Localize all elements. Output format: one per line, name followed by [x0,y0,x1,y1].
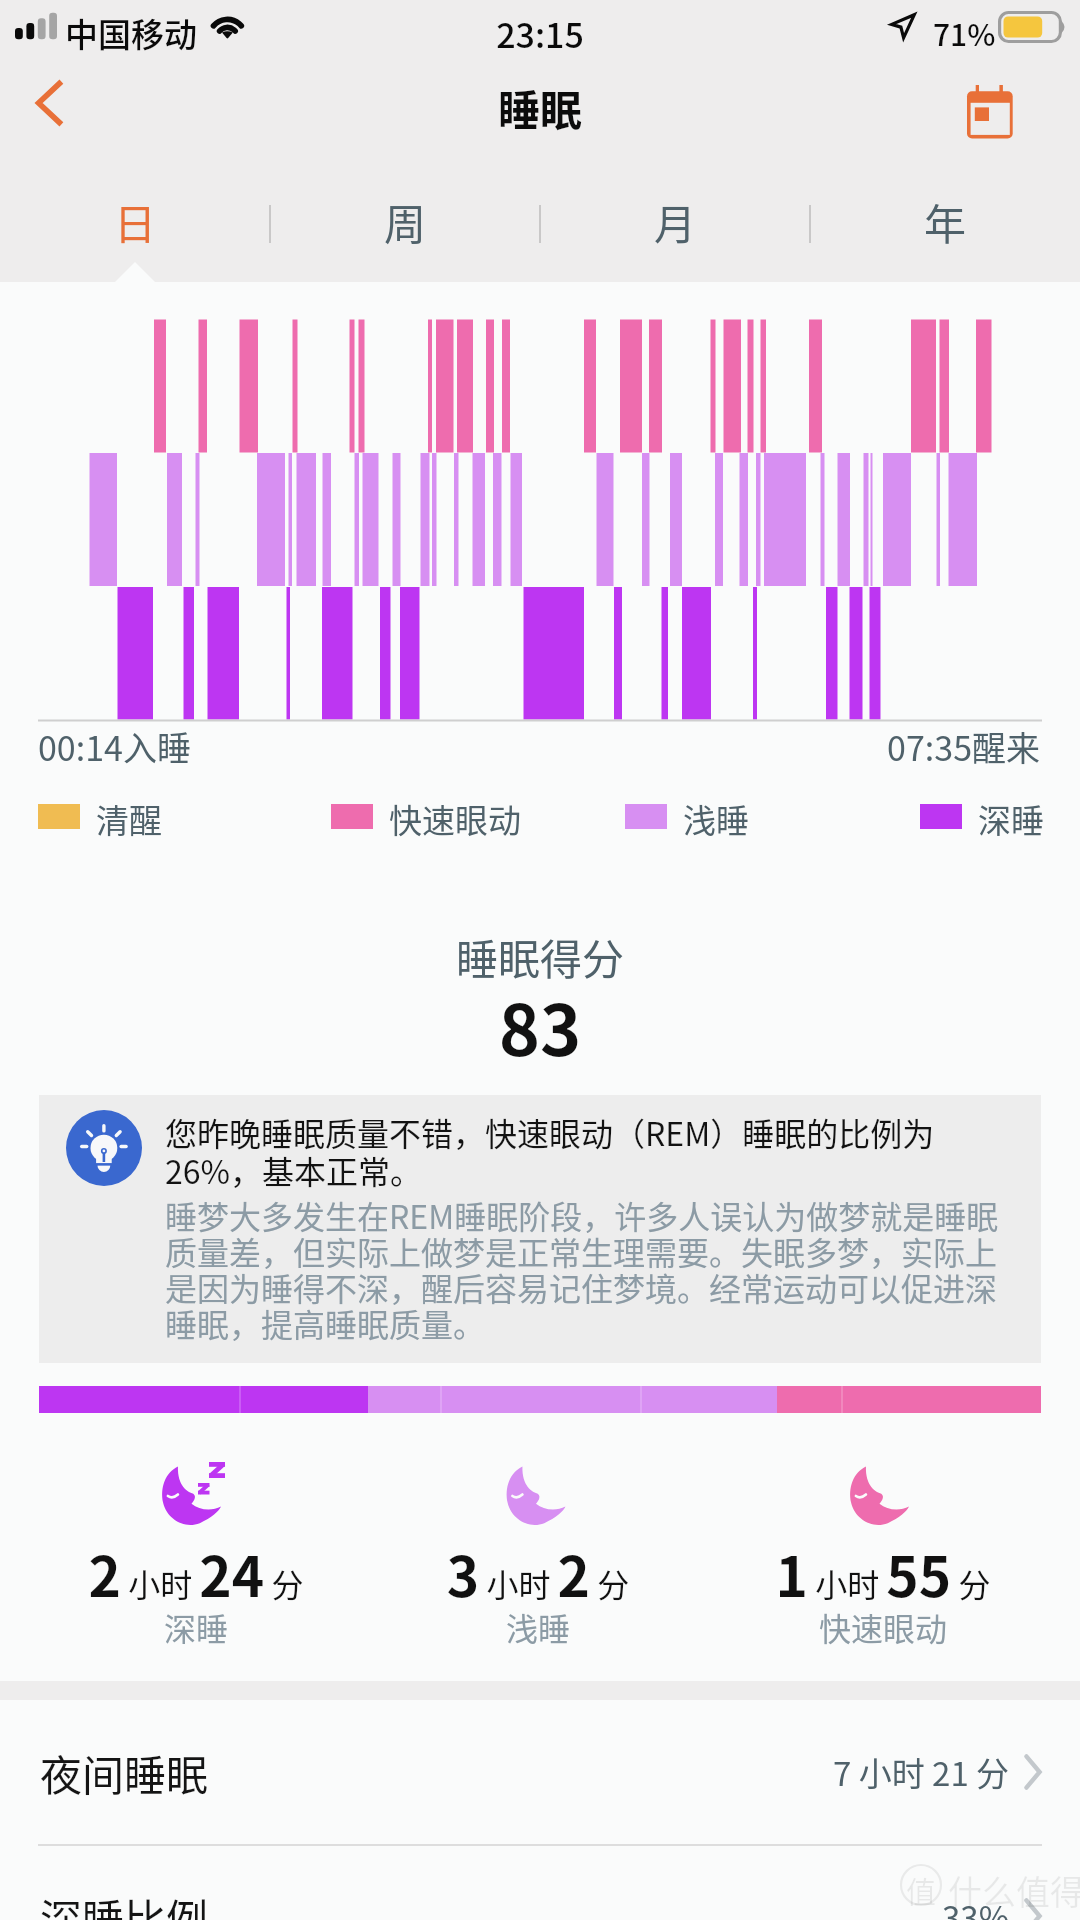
button[interactable]: 清醒 [38,795,162,837]
button[interactable]: 浅睡 [625,795,749,837]
staticText: 年 [924,191,967,252]
staticText: 睡梦大多发生在REM睡眠阶段，许多人误认为做梦就是睡眠 质量差，但实际上做梦是正… [165,1192,999,1346]
button[interactable]: 深睡比例 [0,1844,1080,1920]
staticText: 中国移动 [65,9,197,57]
staticText: 周 [384,191,427,252]
button[interactable]: 深睡 [920,795,1044,837]
staticText: 33% [942,1892,1010,1920]
staticText: 浅睡 [683,795,749,837]
button[interactable]: 月 [540,178,810,264]
staticText: 83 [0,975,1080,1076]
button[interactable]: 2 小时 24 分 [16,1533,376,1645]
staticText: 日 [114,191,157,252]
staticText: 2 小时 24 分 [16,1533,376,1613]
staticText: 00:14入睡 [38,722,191,771]
button[interactable]: 快速眼动 [331,795,521,837]
staticText: 睡眠 [0,77,1080,138]
staticText: 1 小时 55 分 [703,1533,1063,1613]
button[interactable]: 周 [270,178,540,264]
staticText: 月 [654,191,697,252]
staticText: 71% [933,11,996,54]
staticText: 值 [906,1868,936,1911]
staticText: 07:35醒来 [0,722,1040,771]
staticText: 什么值得买 [948,1866,1080,1915]
button[interactable]: Calendar [944,66,1036,158]
button[interactable]: 日 [0,178,270,264]
staticText: 深睡 [16,1604,376,1650]
staticText: 3 小时 2 分 [358,1533,718,1613]
button[interactable]: 3 小时 2 分 [358,1533,718,1645]
staticText: 快速眼动 [389,795,521,837]
staticText: 清醒 [96,795,162,837]
staticText: 浅睡 [358,1604,718,1650]
staticText: 深睡比例 [40,1886,209,1920]
staticText: 您昨晚睡眠质量不错，快速眼动（REM）睡眠的比例为 26%，基本正常。 [165,1109,935,1194]
button[interactable]: 1 小时 55 分 [703,1533,1063,1645]
staticText: 23:15 [0,9,1080,58]
staticText: 睡眠得分 [0,926,1080,987]
button[interactable]: 夜间睡眠 [0,1700,1080,1844]
staticText: 深睡 [978,795,1044,837]
staticText: 7 小时 21 分 [833,1748,1010,1796]
button[interactable]: 年 [810,178,1080,264]
staticText: 夜间睡眠 [40,1742,209,1803]
button[interactable]: Back [8,56,104,152]
staticText: 快速眼动 [703,1604,1063,1650]
